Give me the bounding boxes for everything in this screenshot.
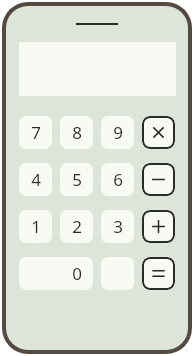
- staticText: 4: [31, 168, 41, 191]
- button[interactable]: Multiply: [142, 116, 175, 149]
- button[interactable]: 7: [19, 116, 52, 149]
- staticText: 9: [113, 121, 123, 144]
- staticText: 8: [72, 121, 82, 144]
- staticText: 1: [31, 215, 41, 238]
- staticText: 7: [31, 121, 41, 144]
- button[interactable]: [101, 257, 134, 290]
- staticText: 3: [113, 215, 123, 238]
- button[interactable]: 0: [19, 257, 93, 290]
- button[interactable]: 8: [60, 116, 93, 149]
- staticText: 6: [113, 168, 123, 191]
- button[interactable]: 6: [101, 163, 134, 196]
- button[interactable]: 1: [19, 210, 52, 243]
- button[interactable]: 2: [60, 210, 93, 243]
- button[interactable]: Subtract: [142, 163, 175, 196]
- staticText: 2: [72, 215, 82, 238]
- button[interactable]: Equals: [142, 257, 175, 290]
- button[interactable]: 4: [19, 163, 52, 196]
- staticText: 0: [72, 262, 82, 285]
- button[interactable]: Add: [142, 210, 175, 243]
- staticText: 5: [72, 168, 82, 191]
- button[interactable]: 5: [60, 163, 93, 196]
- button[interactable]: 9: [101, 116, 134, 149]
- button[interactable]: 3: [101, 210, 134, 243]
